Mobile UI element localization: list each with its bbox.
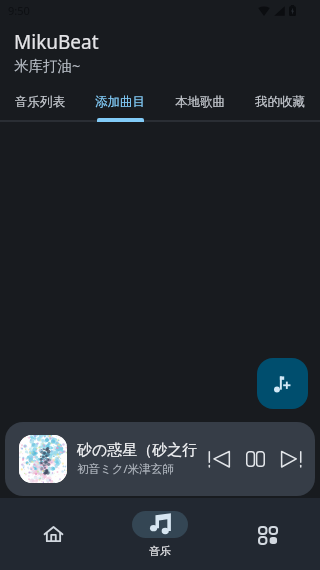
staticText: 我的收藏 — [255, 94, 305, 110]
staticText: MikuBeat — [14, 29, 99, 55]
staticText: 9:50 — [8, 3, 30, 18]
button[interactable]: Next — [280, 448, 302, 470]
staticText: 本地歌曲 — [175, 94, 225, 110]
button[interactable]: Apps — [213, 498, 320, 570]
button[interactable]: Add song — [257, 358, 308, 409]
button[interactable]: Home — [0, 498, 106, 570]
button[interactable]: Previous — [208, 448, 230, 470]
staticText: 砂の惑星（砂之行 — [77, 441, 198, 460]
button[interactable]: Music — [132, 511, 188, 558]
button[interactable]: Pause — [244, 448, 266, 470]
button[interactable]: 砂の惑星（砂之行 — [5, 422, 315, 496]
staticText: 添加曲目 — [95, 94, 145, 110]
staticText: 初音ミク/米津玄師 — [77, 461, 174, 477]
staticText: 米库打油~ — [14, 55, 81, 75]
button[interactable]: 我的收藏 — [240, 89, 320, 122]
button[interactable]: 添加曲目 — [80, 89, 160, 122]
button[interactable]: 音乐列表 — [0, 89, 80, 122]
staticText: 音乐列表 — [15, 94, 65, 110]
button[interactable]: 本地歌曲 — [160, 89, 240, 122]
staticText: 音乐 — [149, 544, 171, 558]
